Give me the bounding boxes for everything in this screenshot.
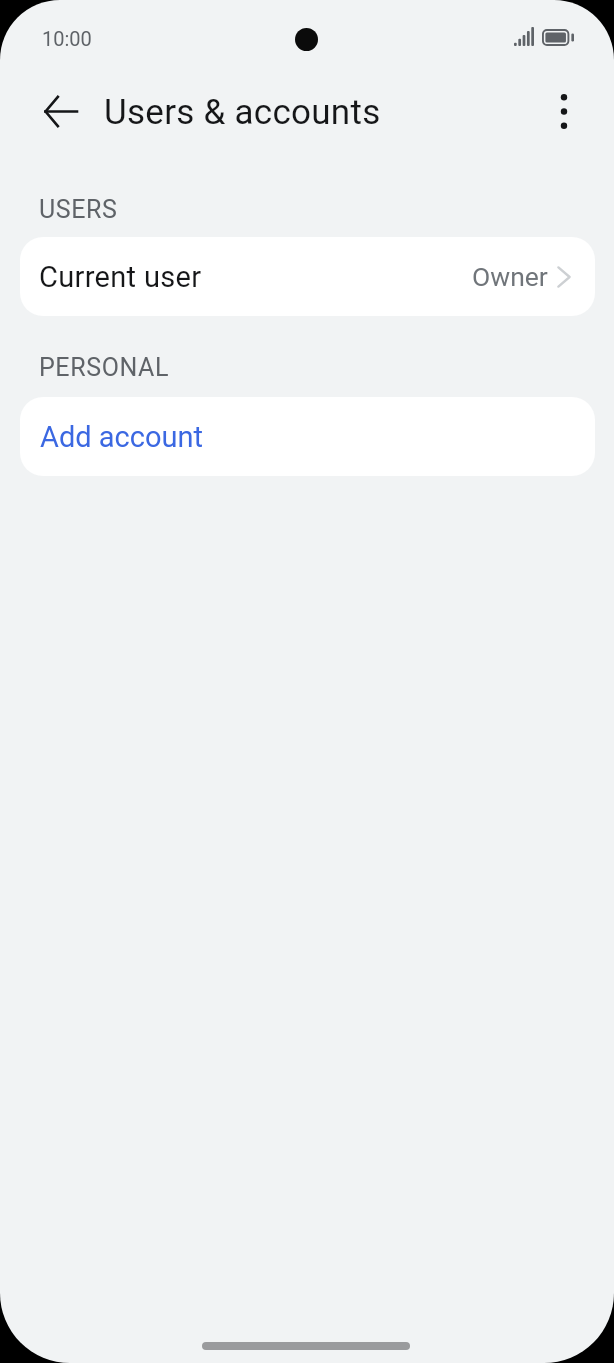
staticText: PERSONAL bbox=[39, 353, 170, 382]
staticText: Add account bbox=[40, 420, 203, 454]
staticText: Owner bbox=[472, 261, 548, 292]
button[interactable]: Back bbox=[30, 81, 90, 141]
button[interactable]: Add account bbox=[20, 397, 595, 476]
staticText: 10:00 bbox=[42, 27, 92, 50]
staticText: USERS bbox=[39, 195, 118, 224]
staticText: Current user bbox=[39, 260, 202, 294]
staticText: Users & accounts bbox=[104, 92, 381, 133]
button[interactable]: More options bbox=[542, 89, 586, 133]
button[interactable]: Current user bbox=[20, 237, 595, 316]
